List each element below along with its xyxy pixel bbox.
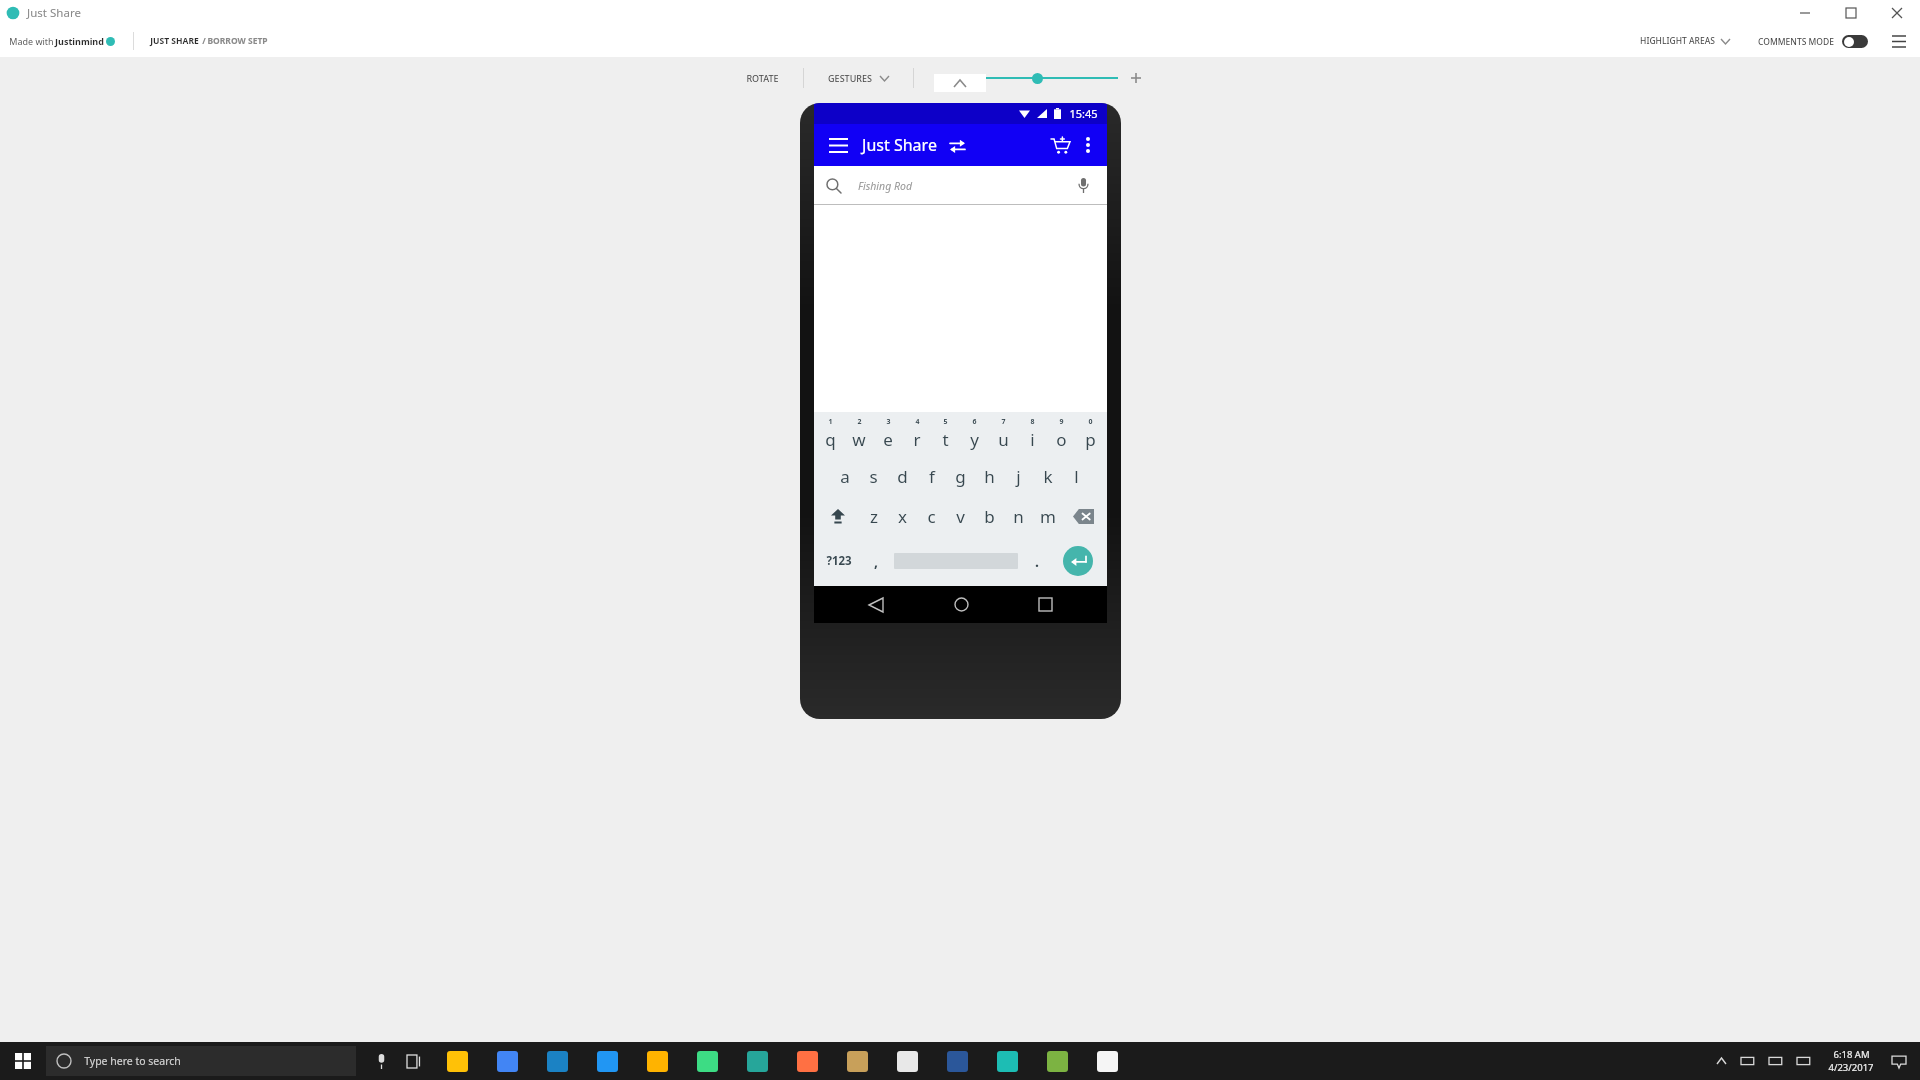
- button[interactable]: Enter: [1051, 536, 1105, 586]
- button[interactable]: App: [982, 1042, 1032, 1080]
- button[interactable]: g: [946, 456, 975, 496]
- staticText: ?123: [826, 553, 852, 569]
- button[interactable]: App: [432, 1042, 482, 1080]
- button[interactable]: Show hidden icons: [1708, 1048, 1734, 1074]
- button[interactable]: 4: [902, 412, 931, 456]
- button[interactable]: 7: [989, 412, 1018, 456]
- button[interactable]: App: [1082, 1042, 1132, 1080]
- button[interactable]: s: [859, 456, 888, 496]
- button[interactable]: 2: [844, 412, 873, 456]
- button[interactable]: h: [975, 456, 1004, 496]
- staticText: Type here to search: [84, 1054, 181, 1068]
- button[interactable]: Home: [939, 586, 983, 623]
- button[interactable]: App: [932, 1042, 982, 1080]
- button[interactable]: 3: [873, 412, 902, 456]
- button[interactable]: Minimize: [1782, 0, 1828, 25]
- button[interactable]: k: [1033, 456, 1062, 496]
- button[interactable]: c: [917, 496, 946, 536]
- button[interactable]: App: [682, 1042, 732, 1080]
- button[interactable]: Start: [0, 1042, 46, 1080]
- button[interactable]: App: [532, 1042, 582, 1080]
- button[interactable]: App: [832, 1042, 882, 1080]
- button[interactable]: HIGHLIGHT AREAS: [1640, 35, 1730, 47]
- button[interactable]: 5: [931, 412, 960, 456]
- button[interactable]: Zoom level: [1032, 73, 1043, 84]
- staticText: c: [927, 505, 936, 528]
- button[interactable]: 9: [1047, 412, 1076, 456]
- button[interactable]: Type here to search: [46, 1046, 356, 1076]
- staticText: BORROW SETP: [207, 35, 268, 47]
- staticText: n: [1013, 505, 1024, 528]
- button[interactable]: Volume: [1790, 1047, 1818, 1075]
- button[interactable]: App: [732, 1042, 782, 1080]
- button[interactable]: Recents: [1023, 586, 1067, 623]
- staticText: i: [1030, 428, 1035, 451]
- button[interactable]: f: [917, 456, 946, 496]
- staticText: ,: [874, 552, 878, 571]
- button[interactable]: 6:18 AM: [1822, 1048, 1880, 1074]
- button[interactable]: Maximize: [1828, 0, 1874, 25]
- button[interactable]: Zoom out: [932, 70, 948, 86]
- staticText: z: [870, 505, 878, 528]
- button[interactable]: Menu: [1888, 30, 1910, 52]
- button[interactable]: Transfer: [947, 135, 967, 155]
- button[interactable]: Collapse: [934, 74, 986, 92]
- button[interactable]: Notifications: [1884, 1046, 1914, 1076]
- staticText: COMMENTS MODE: [1758, 36, 1834, 48]
- button[interactable]: v: [946, 496, 975, 536]
- button[interactable]: x: [888, 496, 917, 536]
- button[interactable]: App: [782, 1042, 832, 1080]
- staticText: 9: [1059, 417, 1064, 427]
- staticText: 3: [886, 417, 891, 427]
- button[interactable]: Cortana: [364, 1044, 398, 1078]
- staticText: j: [1016, 465, 1021, 488]
- button[interactable]: App: [632, 1042, 682, 1080]
- button[interactable]: ,: [861, 536, 890, 586]
- button[interactable]: ROTATE: [736, 72, 789, 84]
- button[interactable]: Space: [890, 536, 1022, 586]
- staticText: t: [942, 428, 949, 451]
- button[interactable]: Open navigation drawer: [825, 132, 851, 158]
- button[interactable]: 1: [816, 412, 844, 456]
- button[interactable]: More options: [1075, 132, 1101, 158]
- button[interactable]: d: [888, 456, 917, 496]
- staticText: Justinmind: [55, 35, 104, 47]
- button[interactable]: Task view: [398, 1044, 432, 1078]
- button[interactable]: 6: [960, 412, 989, 456]
- button[interactable]: App: [882, 1042, 932, 1080]
- button[interactable]: Close: [1874, 0, 1920, 25]
- button[interactable]: Add to cart: [1045, 130, 1075, 160]
- button[interactable]: l: [1062, 456, 1091, 496]
- button[interactable]: JUST SHARE: [150, 35, 268, 47]
- button[interactable]: Backspace: [1062, 496, 1105, 536]
- button[interactable]: App: [582, 1042, 632, 1080]
- button[interactable]: App: [1032, 1042, 1082, 1080]
- button[interactable]: 0: [1076, 412, 1105, 456]
- button[interactable]: COMMENTS MODE: [1758, 35, 1868, 48]
- staticText: h: [984, 465, 995, 488]
- staticText: 5: [943, 417, 948, 427]
- staticText: y: [970, 428, 979, 451]
- button[interactable]: GESTURES: [818, 72, 899, 84]
- button[interactable]: ?123: [816, 536, 861, 586]
- button[interactable]: b: [975, 496, 1004, 536]
- button[interactable]: z: [859, 496, 888, 536]
- button[interactable]: Battery: [1734, 1047, 1762, 1075]
- button[interactable]: Fishing Rod: [814, 166, 1107, 204]
- staticText: g: [955, 465, 966, 488]
- button[interactable]: Back: [854, 586, 898, 623]
- button[interactable]: m: [1033, 496, 1062, 536]
- button[interactable]: Voice search: [1073, 175, 1093, 195]
- button[interactable]: Network: [1762, 1047, 1790, 1075]
- staticText: f: [929, 465, 935, 488]
- staticText: e: [883, 428, 893, 451]
- button[interactable]: App: [482, 1042, 532, 1080]
- staticText: q: [825, 428, 836, 451]
- button[interactable]: Shift: [816, 496, 859, 536]
- button[interactable]: .: [1022, 536, 1051, 586]
- button[interactable]: j: [1004, 456, 1033, 496]
- button[interactable]: Zoom in: [1128, 70, 1144, 86]
- button[interactable]: a: [830, 456, 859, 496]
- button[interactable]: 8: [1018, 412, 1047, 456]
- button[interactable]: n: [1004, 496, 1033, 536]
